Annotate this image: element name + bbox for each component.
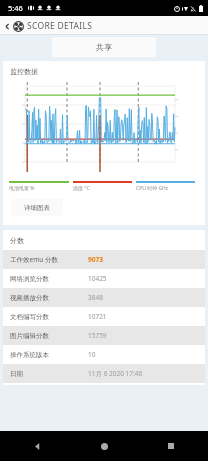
staticText: 共享 [96,42,112,52]
staticText: 10425 [88,274,107,283]
staticText: 11月 6 2020 17:46 [88,369,143,378]
button[interactable]: Home [95,437,113,455]
staticText: 5:46 [8,3,23,13]
button[interactable]: 工作效emu 分数 [3,250,205,269]
button[interactable]: 网络浏览分数 [3,269,205,288]
staticText: 图片编辑分数 [10,332,88,340]
staticText: 详细图表 [24,204,50,212]
staticText: CPU 时钟 GHz [136,185,169,192]
staticText: 分数 [10,236,24,245]
staticText: 15759 [88,331,107,340]
button[interactable]: 操作系统版本 [3,345,205,364]
button[interactable]: 日期 [3,364,205,383]
staticText: 9073 [88,255,103,264]
button[interactable]: 文档编写分数 [3,307,205,326]
staticText: 3848 [88,293,103,302]
button[interactable]: Back [2,21,13,32]
staticText: 温度 °C [73,185,90,192]
button[interactable]: 详细图表 [11,199,63,216]
staticText: 操作系统版本 [10,351,88,359]
staticText: 日期 [10,370,88,378]
staticText: 10 [88,350,96,359]
staticText: 视频播放分数 [10,294,88,302]
staticText: SCORE DETAILS [27,20,93,32]
staticText: 工作效emu 分数 [10,255,88,264]
staticText: 文档编写分数 [10,313,88,321]
staticText: 10721 [88,312,107,321]
staticText: 监控数据 [10,67,38,76]
button[interactable]: 图片编辑分数 [3,326,205,345]
button[interactable]: 共享 [52,37,156,57]
staticText: 电池电量 % [9,185,35,192]
button[interactable]: Back [28,437,46,455]
button[interactable]: Recent apps [162,437,180,455]
button[interactable]: 视频播放分数 [3,288,205,307]
staticText: 网络浏览分数 [10,275,88,283]
